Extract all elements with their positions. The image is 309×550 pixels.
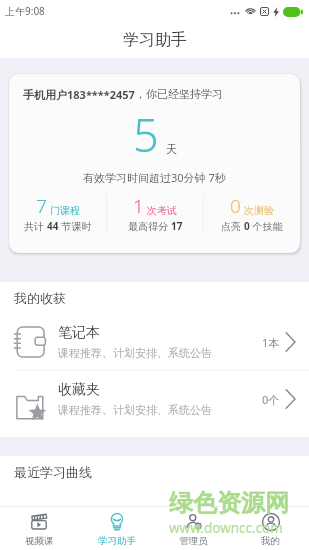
staticText: 17 xyxy=(171,219,183,233)
button[interactable]: 收藏夹 xyxy=(0,371,309,427)
staticText: 最高得分 xyxy=(128,219,171,233)
button[interactable]: 视频课 xyxy=(0,507,78,547)
staticText: 课程推荐、计划安排、系统公告 xyxy=(58,346,212,360)
staticText: 学习助手 xyxy=(123,30,187,50)
button[interactable]: 学习助手 xyxy=(78,507,155,547)
staticText: 0 xyxy=(230,193,241,219)
staticText: 视频课 xyxy=(25,535,54,547)
staticText: 0 xyxy=(244,219,250,233)
staticText: 上午9:08 xyxy=(5,4,45,18)
staticText: 1 xyxy=(133,193,144,219)
staticText: 0个 xyxy=(262,392,280,407)
staticText: 最近学习曲线 xyxy=(14,464,92,480)
staticText: 5 xyxy=(133,104,159,165)
staticText: 我的 xyxy=(261,535,280,547)
staticText: 课程推荐、计划安排、系统公告 xyxy=(58,403,212,417)
staticText: ，你已经坚持学习 xyxy=(135,87,223,101)
staticText: www.downcc.com xyxy=(169,519,283,537)
staticText: 笔记本 xyxy=(58,324,100,342)
staticText: 门课程 xyxy=(50,204,80,217)
button[interactable]: 笔记本 xyxy=(0,314,309,370)
staticText: 有效学习时间超过30分钟 7秒 xyxy=(83,170,226,185)
staticText: 天 xyxy=(166,142,177,156)
staticText: 44 xyxy=(47,219,59,233)
button[interactable]: 管理员 xyxy=(155,507,232,547)
staticText: 管理员 xyxy=(179,535,208,547)
staticText: 收藏夹 xyxy=(58,381,100,399)
staticText: 7 xyxy=(36,193,47,219)
staticText: 次测验 xyxy=(244,204,274,217)
staticText: 1本 xyxy=(262,335,280,350)
button[interactable]: 我的 xyxy=(232,507,309,547)
staticText: 次考试 xyxy=(147,204,177,217)
staticText: 我的收获 xyxy=(14,290,66,306)
staticText: 绿色资源网 xyxy=(169,488,289,518)
staticText: 手机用户183****2457 xyxy=(23,87,135,102)
staticText: 共计 xyxy=(24,219,47,233)
staticText: 个技能 xyxy=(250,219,283,233)
staticText: 点亮 xyxy=(221,219,244,233)
staticText: 学习助手 xyxy=(98,535,136,547)
staticText: 节课时 xyxy=(59,219,92,233)
